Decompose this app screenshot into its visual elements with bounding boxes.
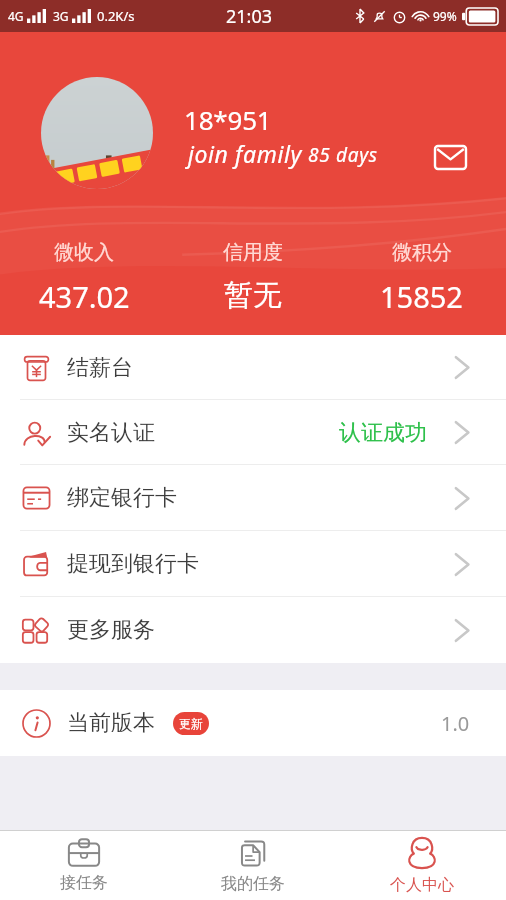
button[interactable]: 绑定银行卡 bbox=[0, 465, 506, 531]
button[interactable]: 更多服务 bbox=[0, 597, 506, 663]
button[interactable]: 我的任务 bbox=[168, 831, 337, 900]
staticText: 绑定银行卡 bbox=[67, 484, 177, 512]
staticText: 99% bbox=[433, 8, 457, 24]
staticText: 暂无 bbox=[224, 277, 282, 314]
button[interactable]: 提现到银行卡 bbox=[0, 531, 506, 597]
staticText: join family bbox=[188, 138, 302, 169]
staticText: 更新 bbox=[179, 716, 203, 731]
staticText: 提现到银行卡 bbox=[67, 550, 199, 578]
staticText: 437.02 bbox=[39, 277, 130, 316]
staticText: 微积分 bbox=[392, 240, 452, 265]
button[interactable]: Messages bbox=[422, 129, 478, 185]
staticText: 4G bbox=[8, 8, 24, 24]
button[interactable]: 个人中心 bbox=[337, 831, 506, 900]
staticText: 1.0 bbox=[441, 710, 470, 737]
staticText: 个人中心 bbox=[390, 875, 454, 895]
staticText: 15852 bbox=[380, 277, 463, 316]
staticText: 结薪台 bbox=[67, 354, 133, 382]
staticText: 18*951 bbox=[184, 102, 272, 137]
staticText: 21:03 bbox=[226, 4, 273, 29]
staticText: 接任务 bbox=[60, 873, 108, 893]
staticText: 我的任务 bbox=[221, 874, 285, 894]
button[interactable]: 当前版本 bbox=[0, 690, 506, 756]
staticText: 当前版本 bbox=[67, 709, 155, 737]
staticText: 85 days bbox=[308, 142, 378, 168]
staticText: 认证成功 bbox=[339, 419, 427, 447]
staticText: 0.2K/s bbox=[97, 7, 135, 25]
button[interactable]: 接任务 bbox=[0, 831, 168, 900]
staticText: 更多服务 bbox=[67, 616, 155, 644]
staticText: 3G bbox=[53, 8, 69, 24]
button[interactable]: 结薪台 bbox=[0, 335, 506, 400]
staticText: 微收入 bbox=[54, 240, 114, 265]
button[interactable] bbox=[41, 77, 153, 189]
staticText: 信用度 bbox=[223, 240, 283, 265]
staticText: 实名认证 bbox=[67, 419, 155, 447]
button[interactable]: 实名认证 bbox=[0, 400, 506, 465]
